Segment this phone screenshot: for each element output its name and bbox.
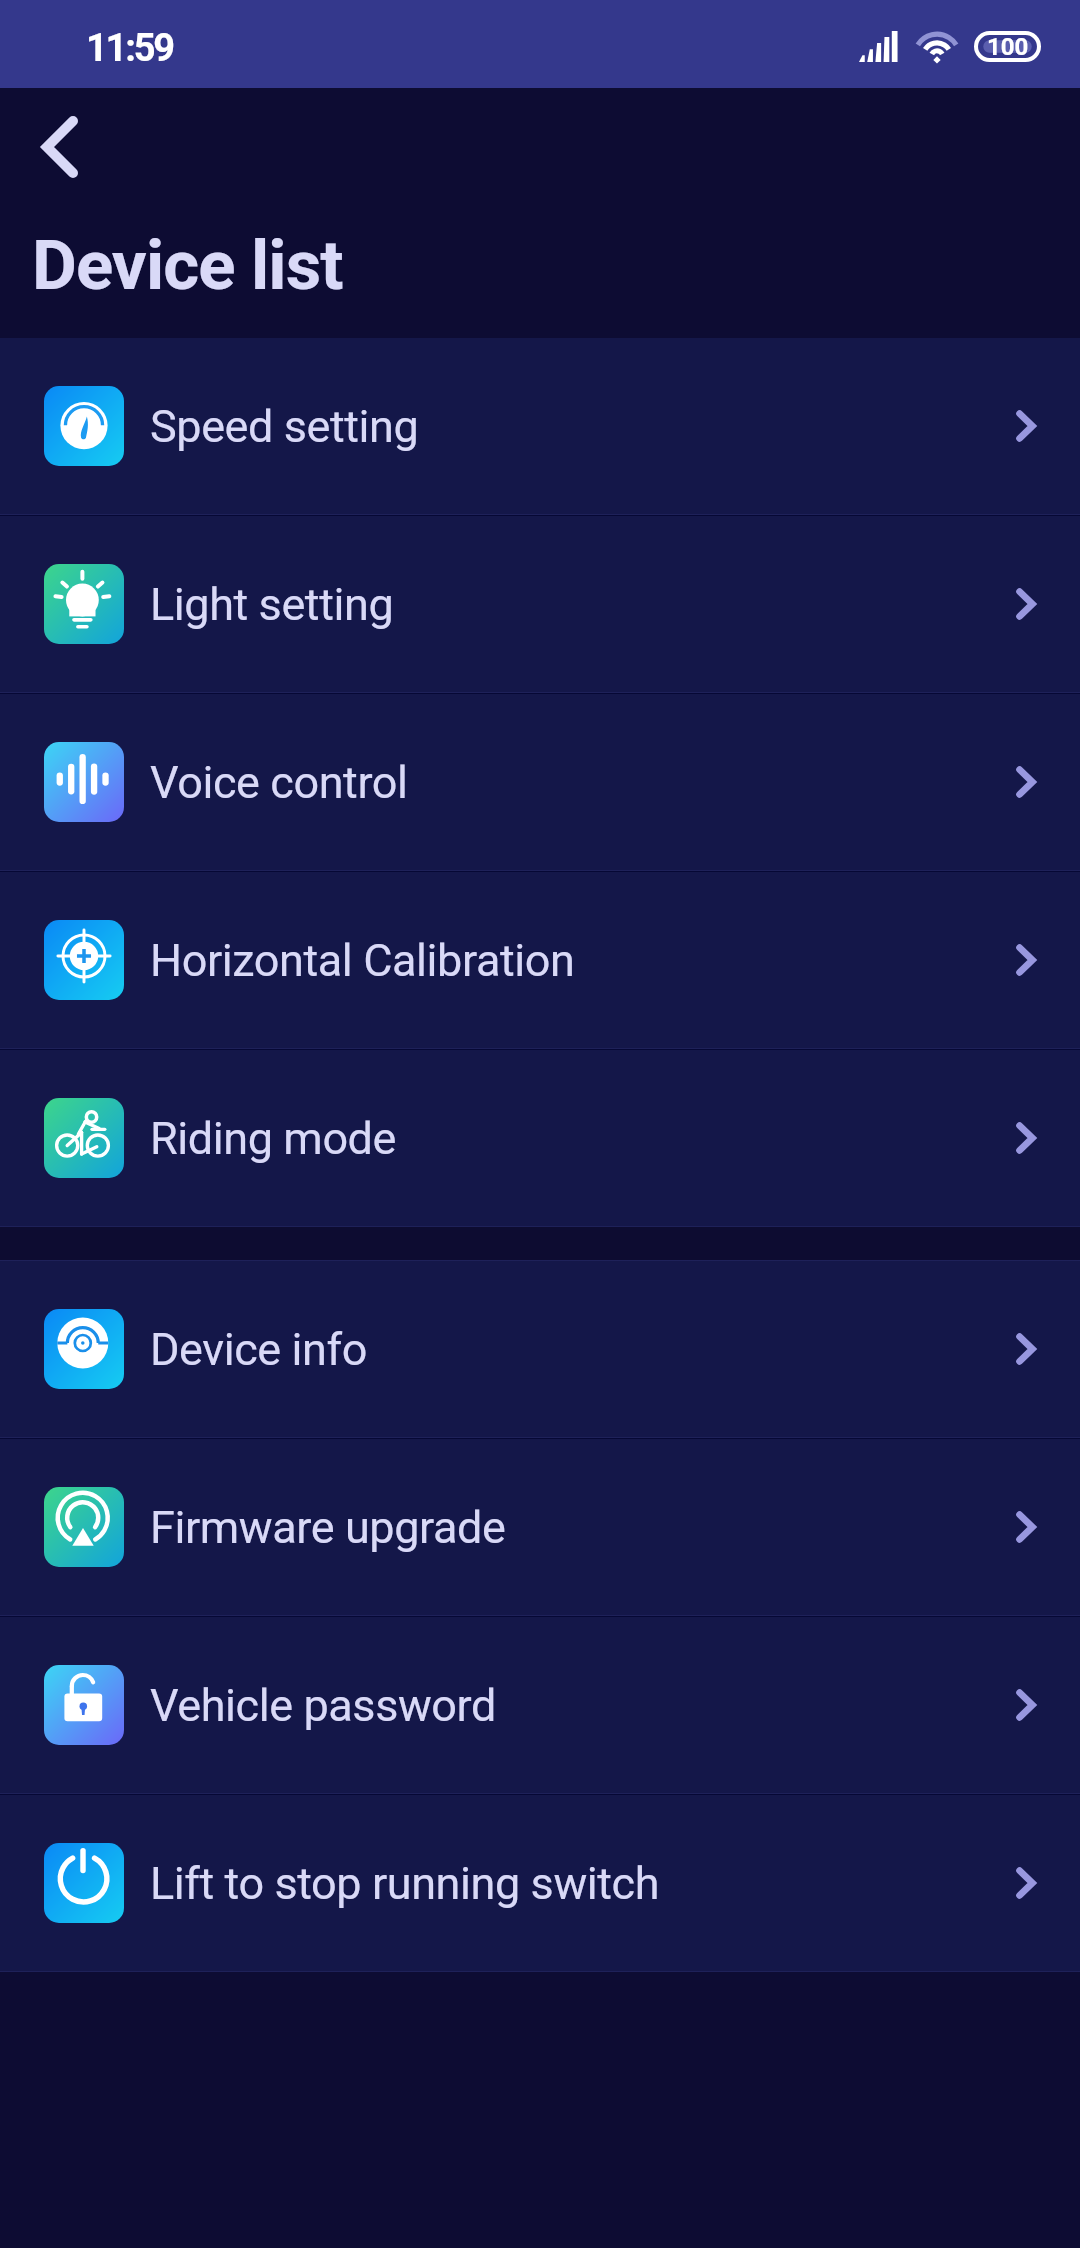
staticText: Device info — [150, 1323, 367, 1376]
staticText: 100 — [987, 33, 1029, 61]
staticText: 11:59 — [86, 26, 173, 71]
staticText: Speed setting — [150, 400, 419, 453]
button[interactable]: Horizontal Calibration — [0, 872, 1080, 1048]
button[interactable]: Lift to stop running switch — [0, 1795, 1080, 1971]
staticText: Horizontal Calibration — [150, 934, 575, 987]
staticText: Vehicle password — [150, 1679, 496, 1732]
button[interactable]: Voice control — [0, 694, 1080, 870]
staticText: Lift to stop running switch — [150, 1857, 660, 1910]
staticText: Light setting — [150, 578, 394, 631]
button[interactable]: Back — [12, 89, 104, 181]
staticText: Voice control — [150, 756, 408, 809]
button[interactable]: Firmware upgrade — [0, 1439, 1080, 1615]
staticText: Device list — [32, 225, 343, 306]
button[interactable]: Light setting — [0, 516, 1080, 692]
staticText: Firmware upgrade — [150, 1501, 506, 1554]
button[interactable]: Riding mode — [0, 1050, 1080, 1226]
staticText: Riding mode — [150, 1112, 397, 1165]
button[interactable]: Speed setting — [0, 338, 1080, 514]
button[interactable]: Vehicle password — [0, 1617, 1080, 1793]
button[interactable]: Device info — [0, 1261, 1080, 1437]
